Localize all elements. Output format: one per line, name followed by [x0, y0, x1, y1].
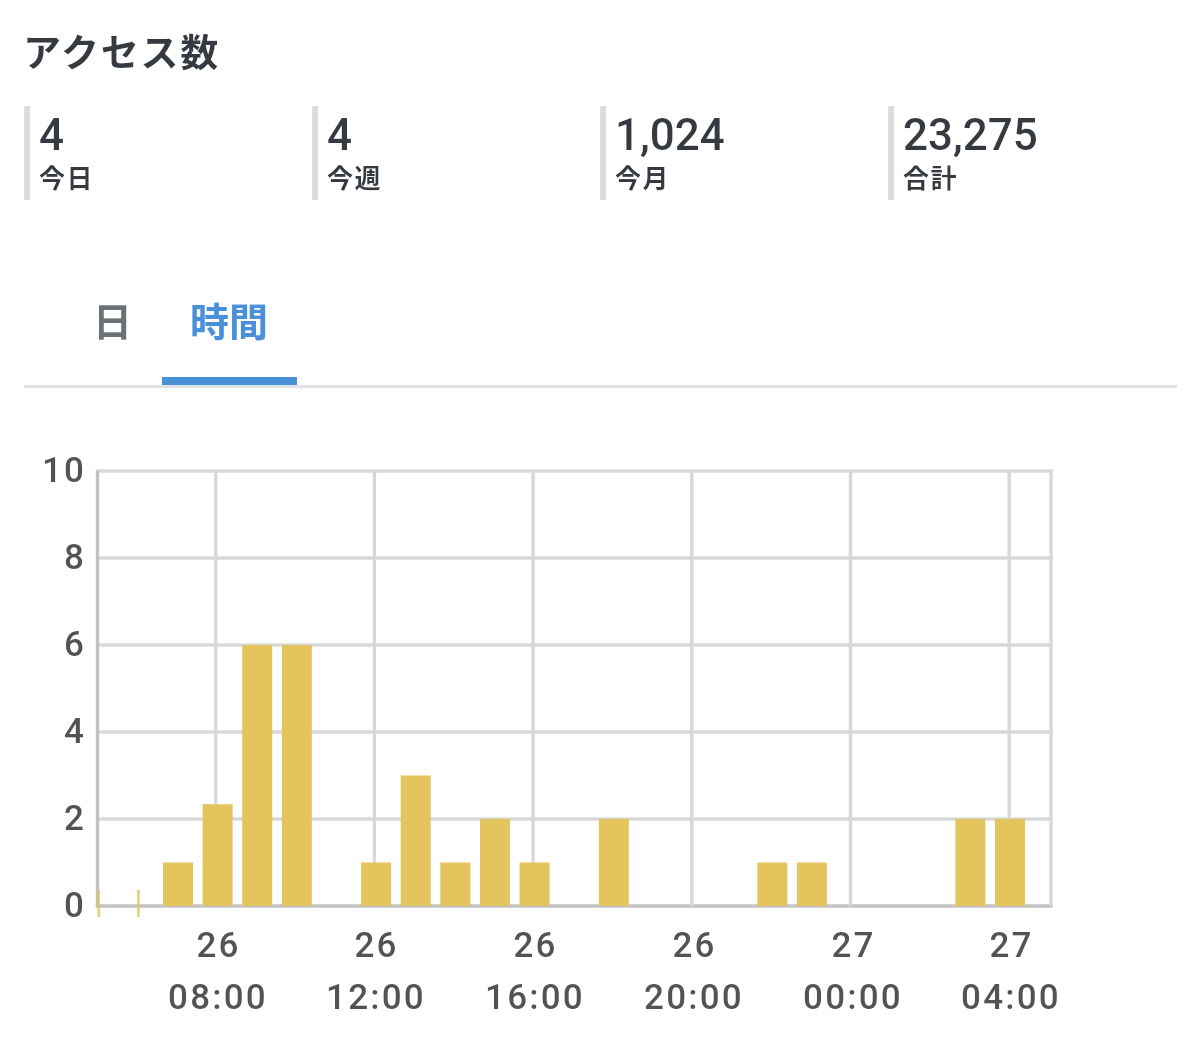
- staticText: 27: [831, 925, 876, 966]
- staticText: 00:00: [803, 977, 903, 1018]
- staticText: 6: [64, 624, 87, 665]
- staticText: 4: [327, 109, 353, 161]
- staticText: 20:00: [644, 977, 744, 1018]
- other: Hourly access chart: [0, 0, 1200, 1039]
- staticText: 合計: [903, 158, 959, 196]
- staticText: 4: [39, 109, 65, 161]
- staticText: 10: [42, 450, 87, 491]
- staticText: 今週: [327, 158, 383, 196]
- staticText: 1,024: [615, 109, 725, 161]
- button[interactable]: 日: [45, 288, 180, 385]
- staticText: 26: [354, 925, 399, 966]
- staticText: 16:00: [485, 977, 585, 1018]
- staticText: 26: [672, 925, 717, 966]
- staticText: 26: [513, 925, 558, 966]
- staticText: アクセス数: [23, 22, 221, 77]
- staticText: 2: [64, 798, 87, 839]
- staticText: 27: [989, 925, 1034, 966]
- staticText: 08:00: [168, 977, 268, 1018]
- staticText: 26: [196, 925, 241, 966]
- staticText: 時間: [190, 291, 269, 347]
- staticText: 0: [64, 885, 87, 926]
- button[interactable]: 1,024: [600, 106, 888, 200]
- staticText: 23,275: [903, 109, 1038, 161]
- button[interactable]: 23,275: [888, 106, 1176, 200]
- staticText: 8: [64, 537, 87, 578]
- staticText: 4: [64, 711, 87, 752]
- staticText: 04:00: [961, 977, 1061, 1018]
- button[interactable]: 4: [312, 106, 600, 200]
- staticText: 今日: [39, 158, 95, 196]
- button[interactable]: 4: [24, 106, 312, 200]
- staticText: 12:00: [326, 977, 426, 1018]
- staticText: 日: [93, 291, 133, 347]
- staticText: 今月: [615, 158, 671, 196]
- button[interactable]: 時間: [162, 288, 297, 385]
